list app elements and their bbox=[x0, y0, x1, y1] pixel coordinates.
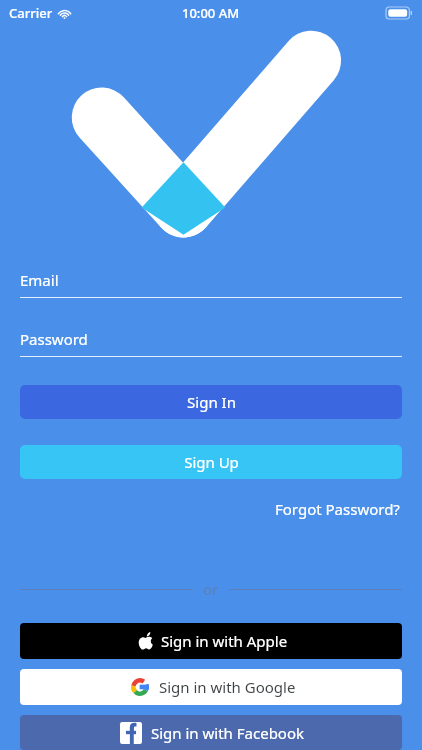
staticText: Forgot Password? bbox=[275, 499, 400, 519]
staticText: Sign in with Google bbox=[159, 677, 296, 697]
button[interactable]: Sign Up bbox=[20, 445, 402, 479]
staticText: Sign In bbox=[187, 392, 236, 412]
button[interactable]: Sign in with Google bbox=[20, 669, 402, 705]
staticText: Email bbox=[20, 270, 59, 290]
button[interactable]: Sign in with Apple bbox=[20, 623, 402, 659]
button[interactable]: Sign in with Facebook bbox=[20, 715, 402, 750]
staticText: Sign in with Apple bbox=[161, 631, 288, 651]
button[interactable]: Password bbox=[0, 329, 422, 357]
staticText: Sign in with Facebook bbox=[151, 723, 305, 743]
staticText: Sign Up bbox=[184, 452, 239, 472]
staticText: 10:00 AM bbox=[182, 4, 240, 22]
button[interactable]: Forgot Password? bbox=[273, 495, 402, 523]
staticText: Carrier bbox=[9, 4, 53, 22]
button[interactable]: Sign In bbox=[20, 385, 402, 419]
staticText: or bbox=[203, 579, 219, 599]
button[interactable]: Email bbox=[0, 270, 422, 298]
staticText: Password bbox=[20, 329, 88, 349]
